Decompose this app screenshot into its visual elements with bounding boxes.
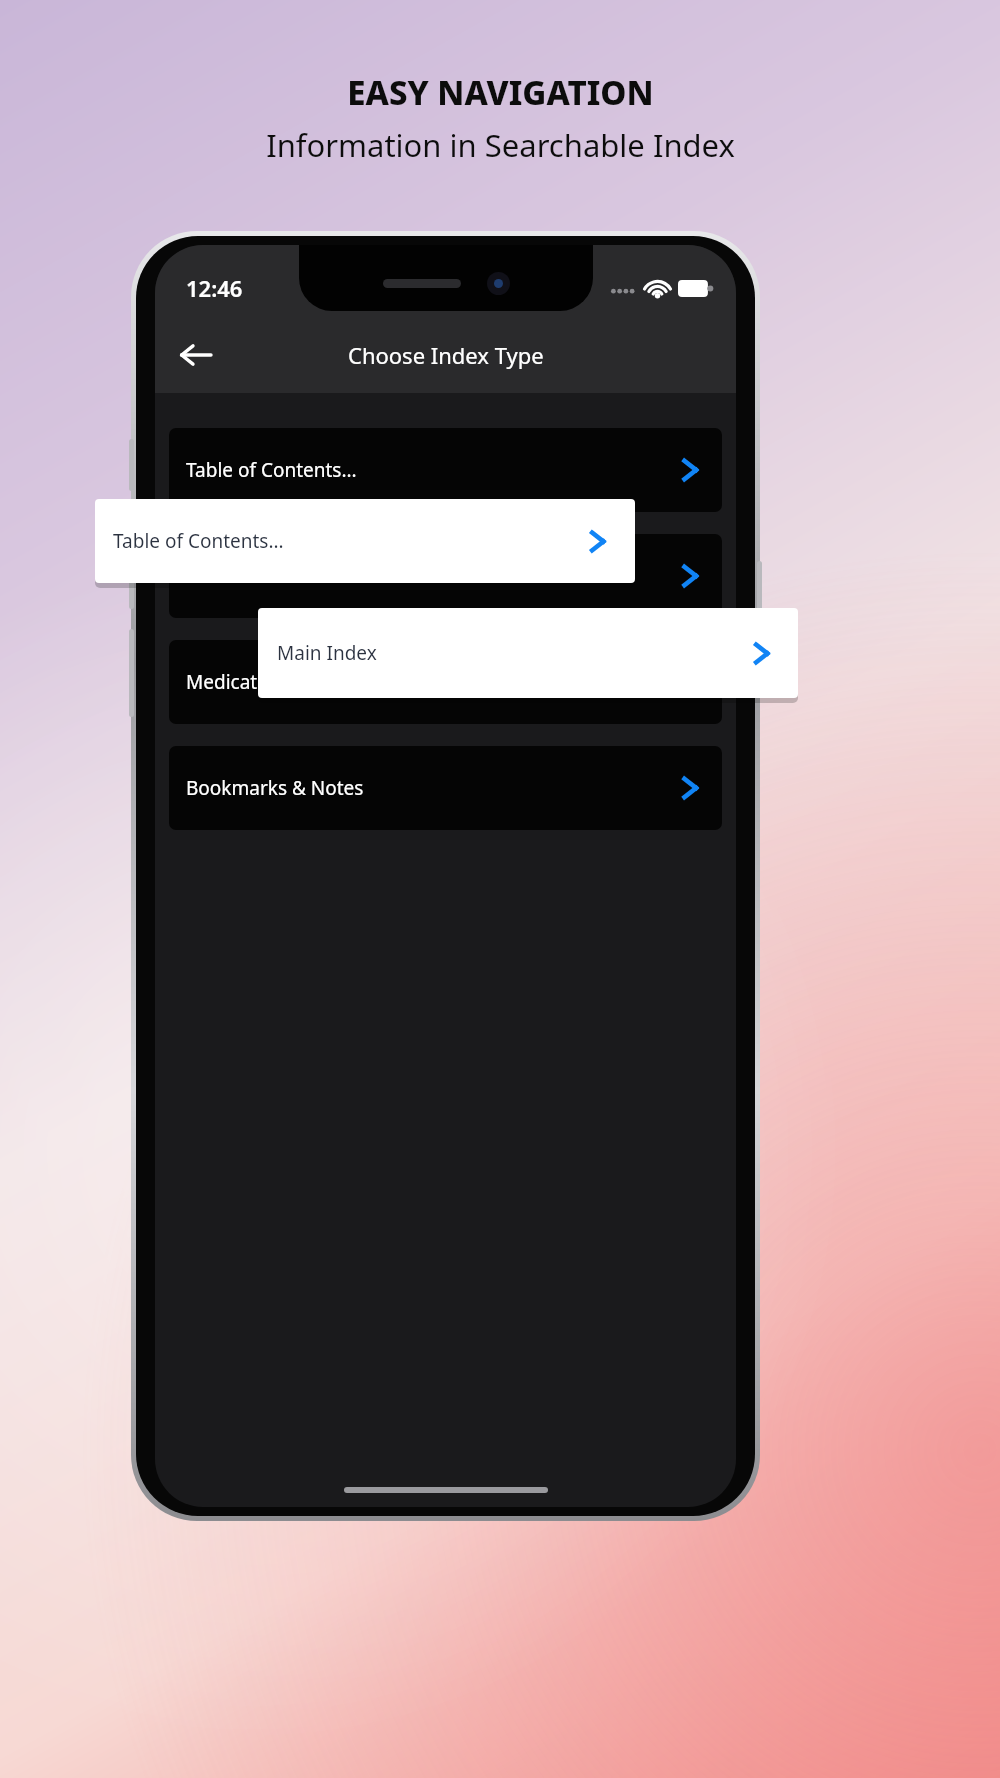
button[interactable]: Table of Contents... [95, 499, 635, 583]
staticText: Main Index [186, 563, 286, 589]
staticText: EASY NAVIGATION [347, 70, 654, 115]
staticText: Medications [186, 669, 295, 695]
staticText: 12:46 [186, 273, 243, 303]
button[interactable]: Main Index [258, 608, 798, 698]
staticText: Table of Contents... [113, 528, 284, 554]
staticText: Choose Index Type [348, 340, 544, 370]
button[interactable]: Main Index [169, 534, 722, 618]
staticText: Bookmarks & Notes [186, 775, 364, 801]
button[interactable]: Medications [169, 640, 722, 724]
button[interactable]: Bookmarks & Notes [169, 746, 722, 830]
staticText: Table of Contents... [186, 457, 357, 483]
staticText: Information in Searchable Index [266, 124, 735, 166]
button[interactable]: Table of Contents... [169, 428, 722, 512]
button[interactable]: Back [169, 328, 223, 382]
staticText: Main Index [277, 640, 377, 666]
